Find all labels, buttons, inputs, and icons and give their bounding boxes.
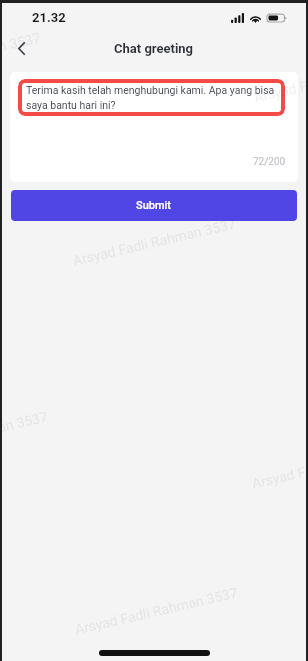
staticText: Arsyad Fadli Rahman 3537 (71, 215, 238, 269)
staticText: 72/200 (253, 156, 286, 168)
button[interactable]: Back (5, 33, 37, 63)
staticText: Arsyad Fadli Rahman 3537 (252, 52, 308, 106)
staticText: Terima kasih telah menghubungi kami. Apa… (26, 84, 283, 111)
staticText: Submit (136, 199, 172, 212)
staticText: 21.32 (32, 10, 66, 25)
staticText: Arsyad Fadli Rahman 3537 (0, 408, 50, 462)
button[interactable]: Submit (11, 190, 297, 221)
staticText: Arsyad Fadli Rahman 3537 (0, 29, 43, 83)
button[interactable]: Terima kasih telah menghubungi kami. Apa… (18, 79, 285, 116)
staticText: Arsyad Fadli Rahman 3537 (250, 438, 308, 492)
staticText: Chat greeting (114, 41, 194, 56)
staticText: Arsyad Fadli Rahman 3537 (73, 584, 240, 638)
